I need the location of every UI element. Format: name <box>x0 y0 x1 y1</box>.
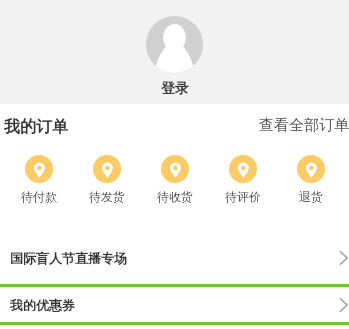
button[interactable]: 待收货 <box>141 155 209 204</box>
button[interactable]: 我的优惠券 <box>0 287 349 322</box>
staticText: 待评价 <box>225 189 261 204</box>
staticText: 待付款 <box>21 189 57 204</box>
staticText: 我的优惠券 <box>10 297 75 313</box>
other: Open 我的优惠券 <box>339 298 348 312</box>
button[interactable]: 待付款 <box>4 155 73 204</box>
other: Open 国际盲人节直播专场 <box>339 251 348 265</box>
button[interactable]: 国际盲人节直播专场 <box>0 231 349 284</box>
staticText: 待发货 <box>89 189 125 204</box>
button[interactable]: 待发货 <box>73 155 141 204</box>
staticText: 退货 <box>299 189 323 204</box>
button[interactable]: 退货 <box>277 155 345 204</box>
staticText: 登录 <box>161 80 189 98</box>
staticText: 待收货 <box>157 189 193 204</box>
button[interactable]: 登录 <box>128 16 221 98</box>
staticText: 我的订单 <box>4 117 68 137</box>
staticText: 国际盲人节直播专场 <box>10 250 127 266</box>
button[interactable]: 待评价 <box>209 155 277 204</box>
button[interactable]: 查看全部订单 <box>259 116 349 135</box>
